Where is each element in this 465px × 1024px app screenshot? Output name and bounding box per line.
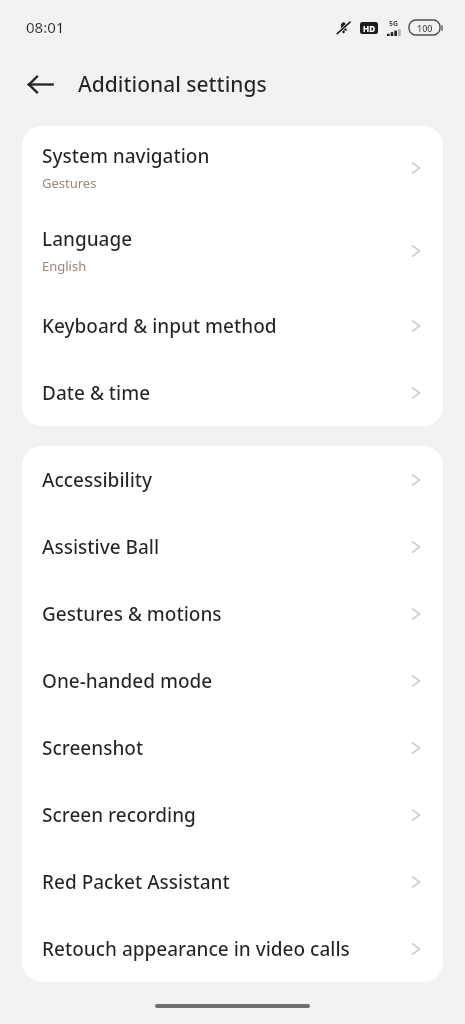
- staticText: Gestures: [42, 174, 97, 192]
- button[interactable]: Screenshot: [22, 714, 443, 781]
- button[interactable]: Screen recording: [22, 781, 443, 848]
- staticText: Assistive Ball: [42, 534, 160, 560]
- staticText: Screenshot: [42, 735, 144, 761]
- button[interactable]: System navigation: [22, 126, 443, 209]
- button[interactable]: Language: [22, 209, 443, 292]
- staticText: English: [42, 257, 87, 275]
- button[interactable]: Back: [16, 60, 64, 108]
- staticText: Gestures & motions: [42, 601, 222, 627]
- staticText: Date & time: [42, 380, 151, 406]
- staticText: Retouch appearance in video calls: [42, 936, 350, 962]
- staticText: Keyboard & input method: [42, 313, 277, 339]
- button[interactable]: Retouch appearance in video calls: [22, 915, 443, 982]
- staticText: System navigation: [42, 143, 210, 169]
- staticText: Language: [42, 226, 133, 252]
- staticText: One-handed mode: [42, 668, 213, 694]
- button[interactable]: Keyboard & input method: [22, 292, 443, 359]
- button[interactable]: One-handed mode: [22, 647, 443, 714]
- button[interactable]: Date & time: [22, 359, 443, 426]
- staticText: Screen recording: [42, 802, 196, 828]
- button[interactable]: Red Packet Assistant: [22, 848, 443, 915]
- staticText: 08:01: [26, 17, 65, 37]
- staticText: 100: [417, 22, 433, 34]
- staticText: Accessibility: [42, 467, 153, 493]
- button[interactable]: Gestures & motions: [22, 580, 443, 647]
- staticText: HD: [363, 23, 375, 34]
- staticText: 5G: [389, 19, 399, 29]
- button[interactable]: Accessibility: [22, 446, 443, 513]
- staticText: Red Packet Assistant: [42, 869, 230, 895]
- staticText: Additional settings: [78, 70, 267, 99]
- button[interactable]: Assistive Ball: [22, 513, 443, 580]
